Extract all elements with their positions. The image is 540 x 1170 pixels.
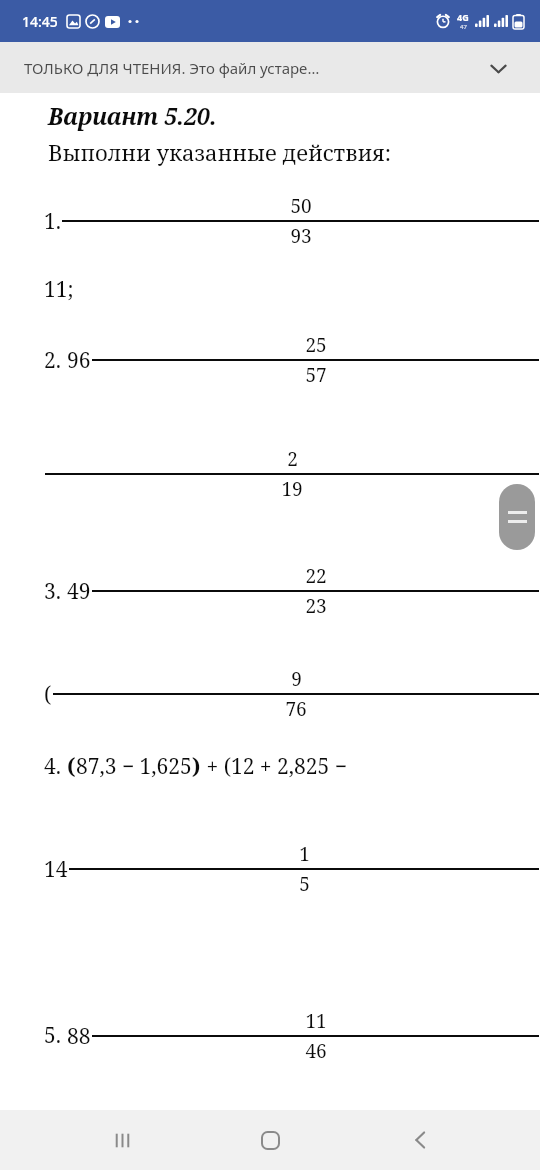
- staticText: 5.: [44, 1021, 67, 1050]
- staticText: 11: [305, 1008, 327, 1034]
- staticText: 87,3 − 1,625: [76, 752, 192, 781]
- button[interactable]: Back: [396, 1116, 444, 1164]
- staticText: 1: [299, 841, 310, 867]
- staticText: ): [192, 752, 201, 781]
- button[interactable]: Expand message: [480, 50, 516, 86]
- staticText: (: [67, 752, 76, 781]
- staticText: 5: [299, 871, 310, 897]
- button[interactable]: Home: [246, 1116, 294, 1164]
- staticText: Вариант 5.20.: [48, 100, 217, 131]
- staticText: 2: [287, 446, 298, 472]
- staticText: 4.: [44, 752, 67, 781]
- button[interactable]: ТОЛЬКО ДЛЯ ЧТЕНИЯ. Это файл устаре…: [0, 42, 540, 93]
- staticText: 3.: [44, 577, 67, 606]
- staticText: 96: [67, 346, 91, 375]
- staticText: 9: [291, 666, 302, 692]
- staticText: 19: [281, 476, 303, 502]
- staticText: 25: [305, 332, 327, 358]
- staticText: 1.: [44, 207, 61, 236]
- staticText: 57: [305, 362, 327, 388]
- staticText: 50: [290, 193, 312, 219]
- staticText: 49: [67, 577, 91, 606]
- staticText: 22: [305, 563, 327, 589]
- staticText: Выполни указанные действия:: [48, 137, 392, 167]
- staticText: 23: [305, 593, 327, 619]
- staticText: 14: [44, 855, 68, 884]
- staticText: 93: [290, 223, 312, 249]
- staticText: 47: [460, 23, 467, 31]
- staticText: + (12 + 2,825 −: [201, 752, 347, 781]
- button[interactable]: Recent apps: [98, 1116, 146, 1164]
- staticText: ТОЛЬКО ДЛЯ ЧТЕНИЯ. Это файл устаре…: [24, 58, 480, 78]
- staticText: 46: [305, 1038, 327, 1064]
- staticText: 11;: [44, 275, 74, 304]
- staticText: 76: [285, 696, 307, 722]
- staticText: 88: [67, 1022, 91, 1051]
- staticText: 4G: [457, 11, 469, 23]
- staticText: 14:45: [22, 12, 58, 31]
- staticText: 2.: [44, 346, 67, 375]
- button[interactable]: Scroll handle: [499, 484, 535, 550]
- staticText: (: [44, 680, 52, 709]
